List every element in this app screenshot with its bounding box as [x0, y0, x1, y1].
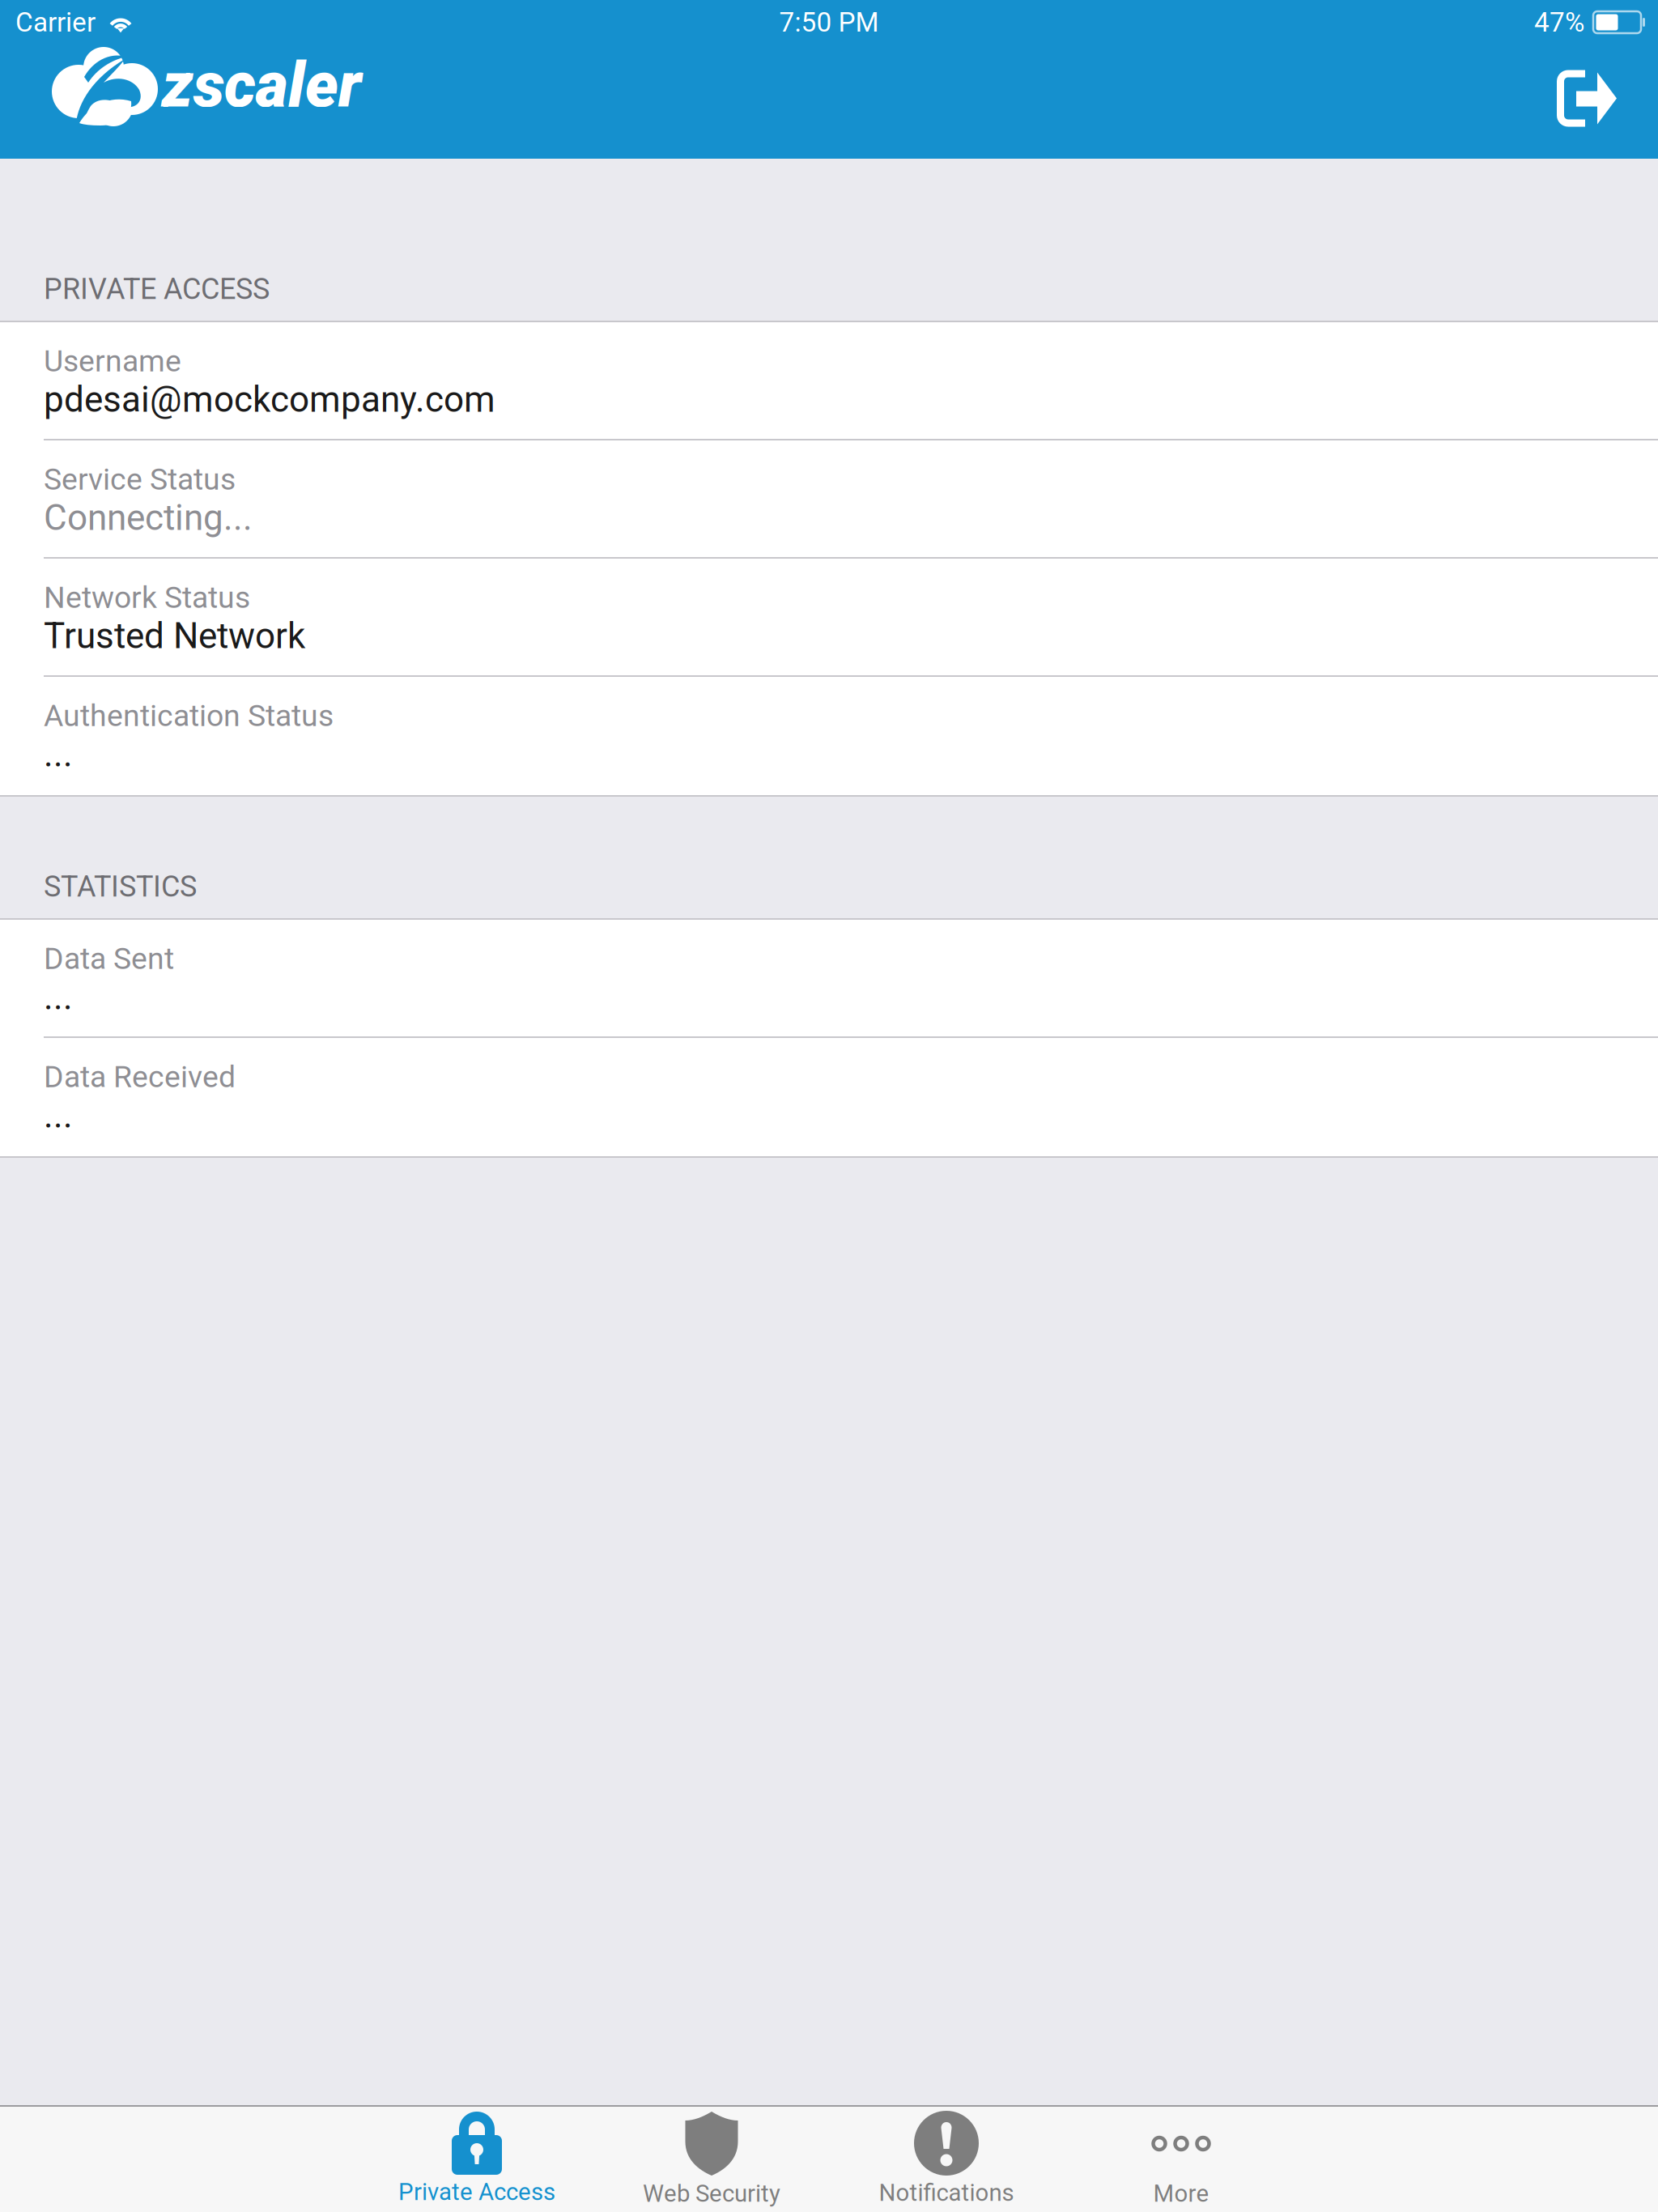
staticText: Web Security	[643, 2180, 780, 2207]
staticText: Connecting...	[44, 497, 253, 539]
staticText: Private Access	[398, 2178, 555, 2206]
staticText: Data Received	[44, 1059, 236, 1094]
button[interactable]: Private Access	[359, 2106, 594, 2212]
staticText: 7:50 PM	[779, 6, 879, 38]
staticText: pdesai@mockcompany.com	[44, 379, 495, 420]
button[interactable]: Data Sent	[0, 920, 1658, 1038]
button[interactable]: Authentication Status	[0, 677, 1658, 795]
button[interactable]: Username	[0, 322, 1658, 440]
staticText: Notifications	[879, 2179, 1014, 2207]
staticText: Username	[44, 343, 181, 379]
staticText: Trusted Network	[44, 615, 305, 657]
button[interactable]: Network Status	[0, 559, 1658, 677]
button[interactable]: Data Received	[0, 1038, 1658, 1156]
button[interactable]: Web Security	[594, 2106, 829, 2212]
staticText: ...	[44, 733, 73, 775]
button[interactable]: More	[1064, 2106, 1299, 2212]
staticText: STATISTICS	[44, 869, 197, 904]
staticText: Service Status	[44, 462, 236, 497]
staticText: ...	[44, 1094, 73, 1136]
staticText: 47%	[1534, 6, 1584, 38]
button[interactable]: Notifications	[829, 2106, 1064, 2212]
staticText: zscaler	[162, 48, 361, 122]
staticText: Network Status	[44, 580, 250, 615]
staticText: ...	[44, 976, 73, 1018]
staticText: Authentication Status	[44, 698, 334, 733]
staticText: Carrier	[15, 6, 96, 38]
button[interactable]: Service Status	[0, 440, 1658, 559]
staticText: PRIVATE ACCESS	[44, 272, 270, 306]
staticText: Data Sent	[44, 941, 174, 976]
staticText: More	[1153, 2180, 1209, 2207]
button[interactable]: Sign out	[1546, 57, 1627, 146]
